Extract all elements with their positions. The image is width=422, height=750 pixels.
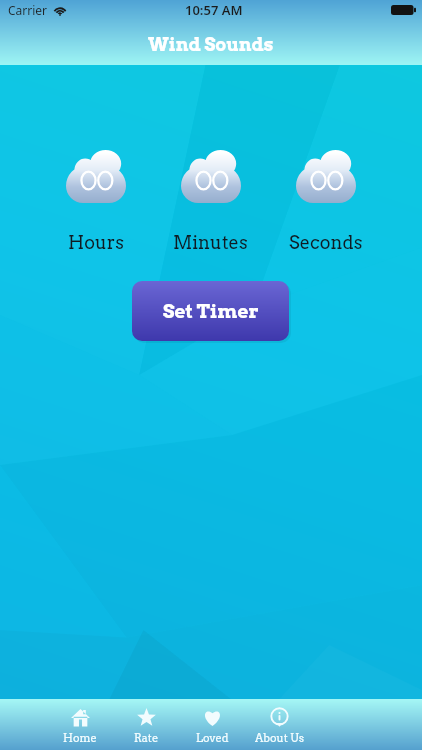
staticText: 10:57 AM	[185, 1, 243, 19]
staticText: Home	[63, 731, 97, 744]
button[interactable]: Rate	[113, 699, 179, 750]
button[interactable]	[181, 150, 241, 203]
button[interactable]: About Us	[246, 699, 313, 750]
staticText: Loved	[196, 731, 229, 744]
button[interactable]: Home	[47, 699, 113, 750]
button[interactable]	[296, 150, 356, 203]
staticText: Seconds	[289, 232, 363, 254]
button[interactable]: Set Timer	[132, 281, 289, 341]
staticText: Minutes	[173, 232, 248, 254]
staticText: Carrier	[8, 2, 48, 18]
staticText: Set Timer	[163, 300, 259, 323]
staticText: Wind Sounds	[148, 34, 274, 56]
staticText: About Us	[255, 731, 305, 744]
staticText: Hours	[68, 232, 124, 254]
staticText: Rate	[134, 731, 159, 744]
button[interactable]: Loved	[179, 699, 246, 750]
button[interactable]	[66, 150, 126, 203]
